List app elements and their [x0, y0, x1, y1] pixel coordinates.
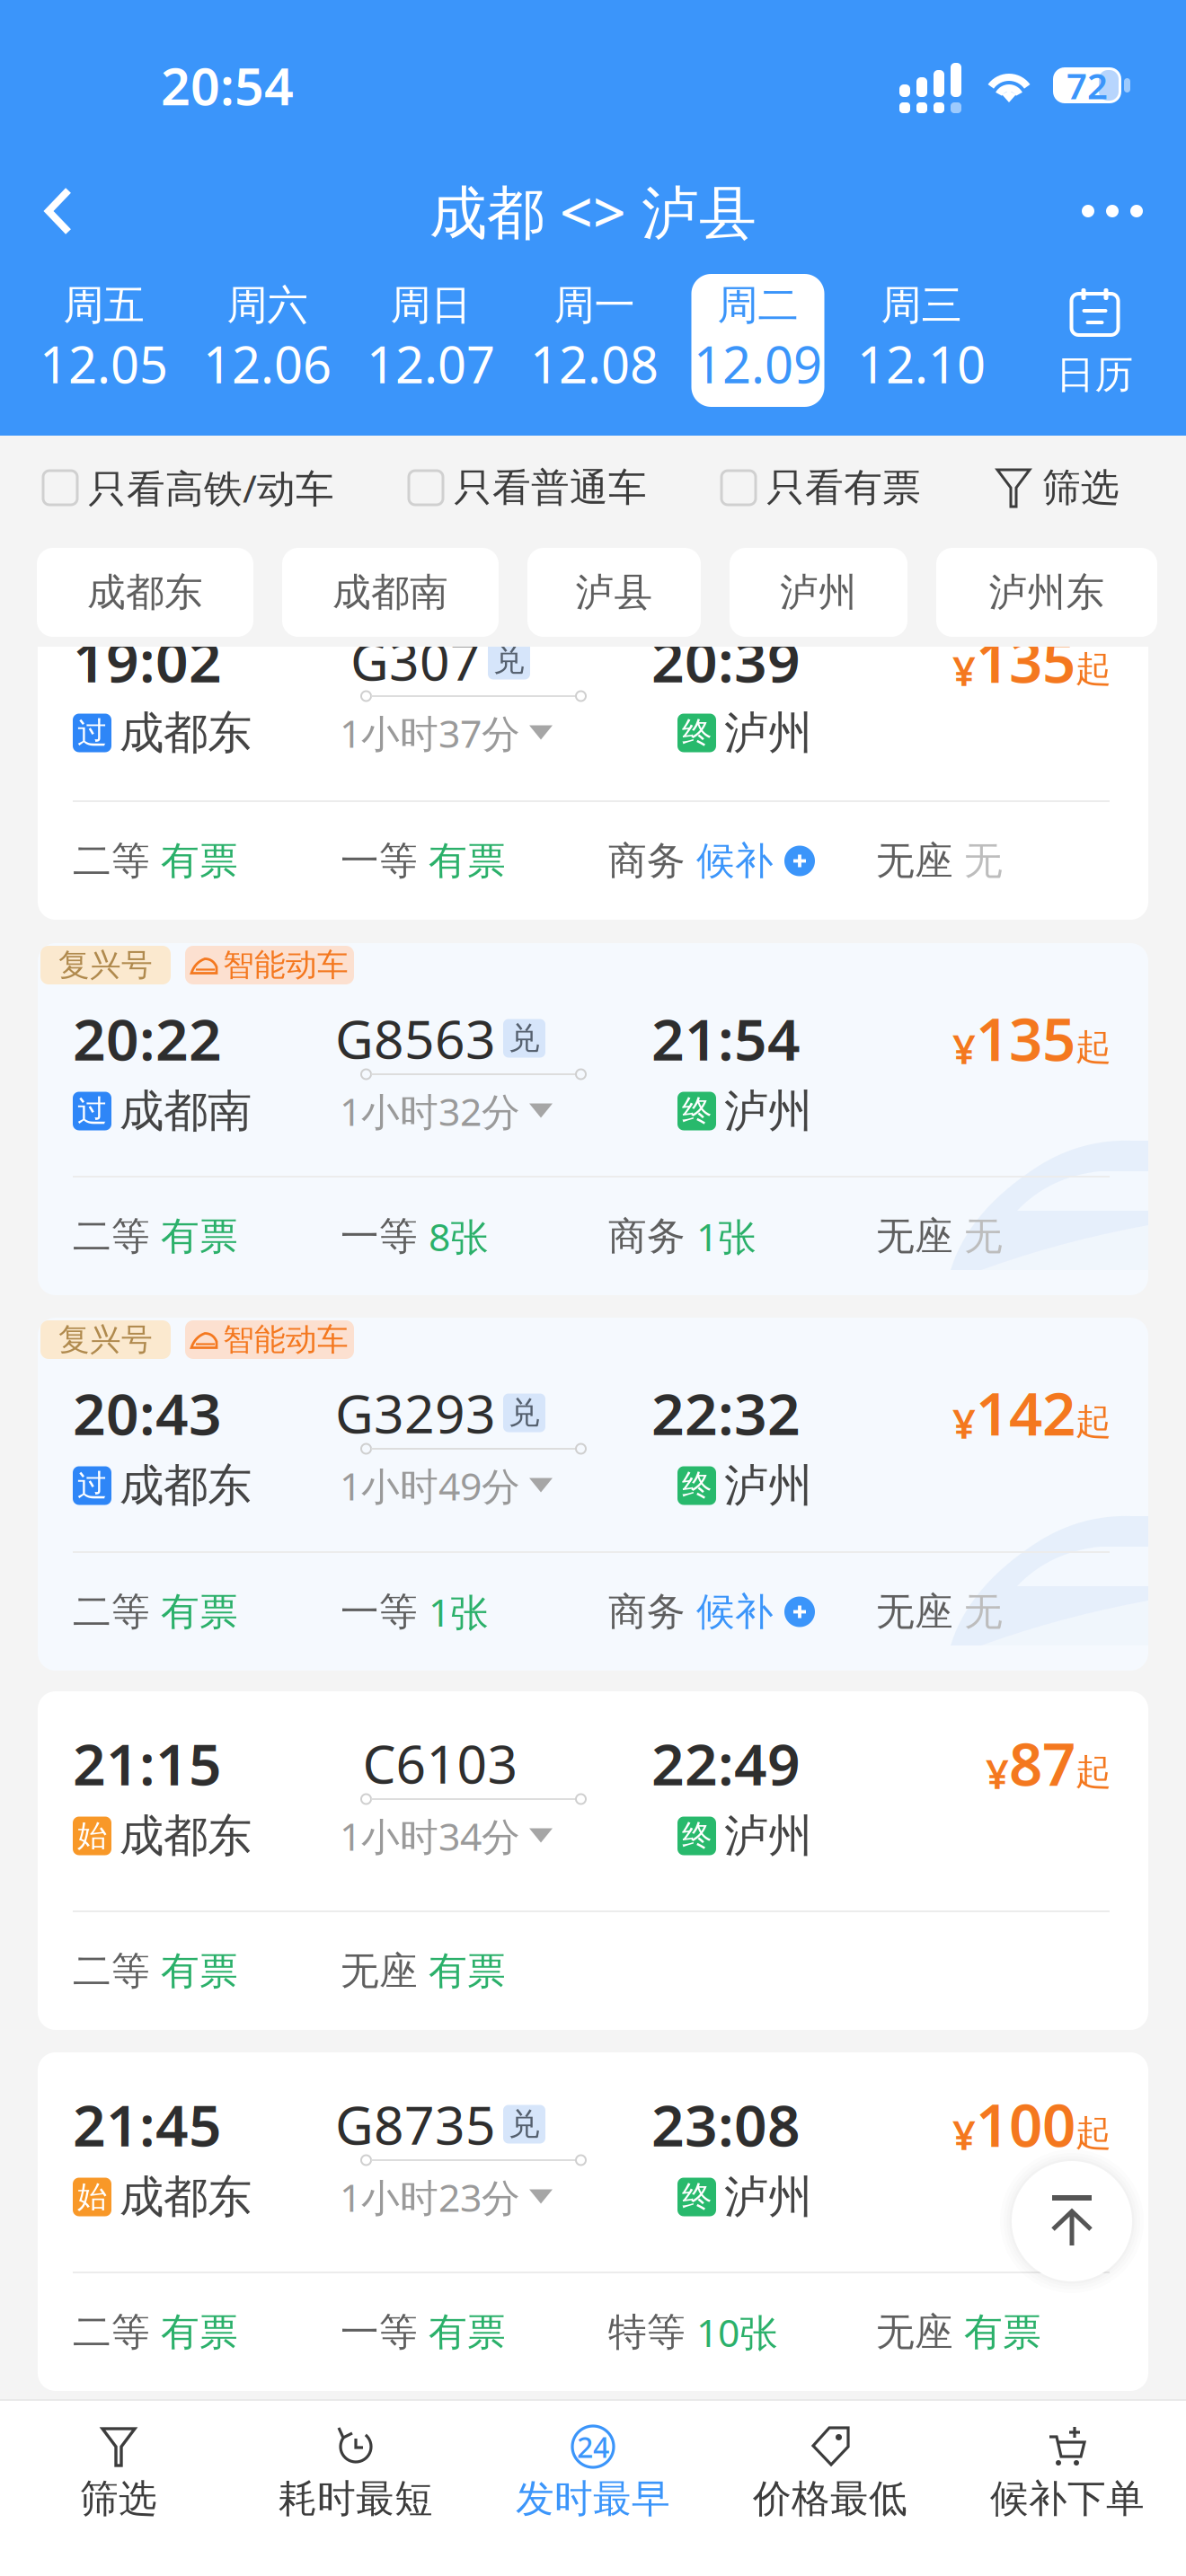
- staticText: 12.05: [40, 330, 168, 397]
- button[interactable]: 复兴号: [38, 943, 1148, 1295]
- staticText: 只看高铁/动车: [88, 462, 334, 513]
- staticText: 142: [976, 1374, 1075, 1452]
- staticText: 终: [682, 715, 712, 751]
- staticText: 起: [1075, 1400, 1111, 1444]
- staticText: 20:39: [651, 622, 801, 698]
- staticText: 泸州东: [989, 569, 1105, 616]
- button[interactable]: 日历: [1003, 273, 1186, 408]
- button[interactable]: 周二: [676, 273, 840, 408]
- button[interactable]: 耗时最短: [237, 2400, 474, 2576]
- button[interactable]: 周五: [22, 273, 186, 408]
- staticText: 无座: [341, 1948, 418, 1995]
- staticText: 无座: [876, 2309, 953, 2356]
- staticText: 12.07: [367, 330, 495, 397]
- staticText: 筛选: [1042, 464, 1120, 511]
- staticText: 复兴号: [58, 1321, 153, 1359]
- staticText: 有票: [429, 837, 506, 884]
- staticText: 72: [1067, 61, 1108, 109]
- staticText: 有票: [429, 2309, 506, 2356]
- staticText: 周一: [554, 280, 635, 330]
- button[interactable]: 只看普通车: [409, 464, 647, 511]
- button[interactable]: 成都东: [37, 548, 253, 637]
- staticText: ¥: [986, 1746, 1009, 1800]
- button[interactable]: 周一: [513, 273, 676, 408]
- staticText: 12.08: [530, 330, 659, 397]
- button[interactable]: 周日: [349, 273, 513, 408]
- staticText: 12.10: [857, 330, 986, 397]
- staticText: 只看有票: [766, 464, 921, 511]
- staticText: 泸州: [780, 569, 857, 616]
- staticText: 特等: [608, 2309, 686, 2356]
- staticText: 复兴号: [58, 946, 153, 984]
- staticText: 135: [976, 621, 1075, 699]
- staticText: 候补下单: [990, 2475, 1145, 2522]
- staticText: 1小时32分: [340, 1086, 520, 1137]
- staticText: 泸州: [724, 1084, 812, 1138]
- staticText: 二等: [73, 1213, 150, 1260]
- staticText: 终: [682, 2179, 712, 2215]
- staticText: G3293: [335, 1378, 496, 1448]
- staticText: 10张: [696, 2307, 778, 2358]
- button[interactable]: 周六: [186, 273, 349, 408]
- button[interactable]: 返回: [0, 162, 180, 260]
- staticText: 20:43: [73, 1375, 222, 1451]
- staticText: 无座: [876, 1588, 953, 1635]
- staticText: 12.09: [694, 330, 822, 397]
- staticText: 20:22: [73, 1000, 222, 1076]
- staticText: 成都南: [332, 569, 448, 616]
- staticText: 成都东: [119, 706, 252, 760]
- staticText: 起: [1075, 1750, 1111, 1794]
- button[interactable]: 候补下单: [949, 2400, 1186, 2576]
- button[interactable]: 复兴号: [38, 1318, 1148, 1671]
- staticText: 智能动车: [223, 946, 349, 984]
- button[interactable]: 24: [474, 2400, 712, 2576]
- staticText: 过: [77, 715, 107, 751]
- staticText: 二等: [73, 837, 150, 884]
- staticText: 成都东: [119, 2170, 252, 2224]
- staticText: 商务: [608, 1213, 686, 1260]
- staticText: G8563: [335, 1003, 496, 1073]
- button[interactable]: 回到顶部: [1000, 2149, 1144, 2293]
- button[interactable]: 21:45: [38, 2052, 1148, 2391]
- staticText: 有票: [161, 1588, 238, 1635]
- button[interactable]: 更多: [1006, 162, 1186, 260]
- button[interactable]: 泸州东: [936, 548, 1157, 637]
- staticText: 兑: [509, 1394, 540, 1432]
- button[interactable]: 泸县: [527, 548, 701, 637]
- staticText: 起: [1075, 2111, 1111, 2155]
- staticText: 兑: [493, 641, 525, 679]
- staticText: ¥: [952, 1021, 976, 1075]
- staticText: 有票: [429, 1948, 506, 1995]
- staticText: 100: [976, 2085, 1075, 2163]
- staticText: 21:54: [651, 1000, 801, 1076]
- staticText: 周六: [227, 280, 308, 330]
- staticText: 候补: [696, 1588, 774, 1635]
- staticText: ¥: [952, 1396, 976, 1450]
- button[interactable]: 只看高铁/动车: [43, 462, 334, 513]
- button[interactable]: 只看有票: [721, 464, 921, 511]
- staticText: 1小时34分: [340, 1810, 520, 1861]
- button[interactable]: 19:02: [38, 599, 1148, 920]
- button[interactable]: 成都南: [282, 548, 499, 637]
- staticText: 终: [682, 1467, 712, 1504]
- button[interactable]: 周三: [840, 273, 1003, 408]
- staticText: 终: [682, 1817, 712, 1854]
- staticText: 日历: [1056, 351, 1133, 398]
- button[interactable]: 筛选: [996, 464, 1120, 511]
- staticText: 候补: [696, 837, 774, 884]
- staticText: ¥: [952, 2107, 976, 2161]
- button[interactable]: 筛选: [0, 2400, 237, 2576]
- staticText: 有票: [161, 1213, 238, 1260]
- staticText: 有票: [161, 837, 238, 884]
- button[interactable]: 价格最低: [712, 2400, 949, 2576]
- staticText: 22:32: [651, 1375, 801, 1451]
- staticText: 无: [964, 837, 1003, 884]
- staticText: 泸州: [724, 1809, 812, 1863]
- staticText: 无座: [876, 1213, 953, 1260]
- button[interactable]: 泸州: [730, 548, 907, 637]
- staticText: 20:54: [161, 51, 294, 119]
- button[interactable]: 21:15: [38, 1691, 1148, 2030]
- staticText: 泸县: [575, 569, 653, 616]
- staticText: 起: [1075, 647, 1111, 691]
- staticText: 12.06: [203, 330, 332, 397]
